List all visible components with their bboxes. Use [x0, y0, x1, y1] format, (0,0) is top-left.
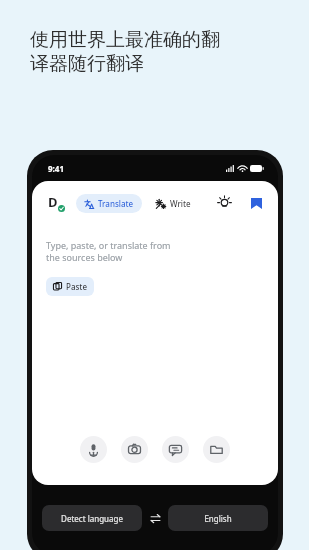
staticText: Type, paste, or translate from [46, 239, 171, 251]
staticText: Translate [98, 198, 134, 209]
staticText: Paste [66, 281, 87, 292]
button[interactable]: Camera translate [121, 436, 148, 463]
button[interactable]: Detect language [42, 505, 142, 531]
staticText: the sources below [46, 251, 123, 263]
button[interactable]: Translate [76, 194, 142, 213]
button[interactable]: Tips [214, 193, 234, 213]
staticText: D [48, 193, 58, 211]
button[interactable]: DeepL logo [44, 192, 66, 214]
button[interactable]: Documents [203, 436, 230, 463]
button[interactable]: Paste [46, 277, 94, 296]
button[interactable]: Write [152, 194, 194, 213]
button[interactable]: Conversation [162, 436, 189, 463]
staticText: 使用世界上最准确的翻 [30, 28, 220, 52]
button[interactable]: English [168, 505, 268, 531]
button[interactable]: Swap languages [142, 505, 168, 531]
staticText: 9:41 [48, 163, 64, 174]
button[interactable]: Saved [246, 193, 266, 213]
staticText: 译器随行翻译 [30, 52, 144, 76]
staticText: English [204, 513, 232, 524]
staticText: Write [170, 198, 191, 209]
button[interactable]: Voice input [80, 436, 107, 463]
staticText: Detect language [61, 513, 123, 524]
